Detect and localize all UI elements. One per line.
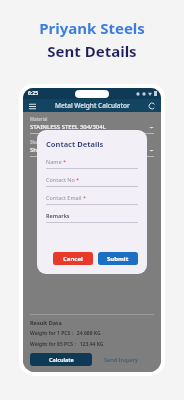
staticText: STAINLESS STEEL 304/304L xyxy=(30,123,149,131)
button[interactable]: Shape xyxy=(30,139,154,157)
button[interactable]: Cancel xyxy=(53,252,93,265)
staticText: Cancel xyxy=(63,255,83,263)
staticText: 6:25 xyxy=(28,90,38,97)
staticText: Name xyxy=(46,158,62,165)
staticText: Result Data xyxy=(30,319,62,326)
staticText: Contact Details xyxy=(46,139,104,149)
staticText: Sheet/Plate xyxy=(30,146,149,154)
button[interactable]: Calculate xyxy=(30,353,92,366)
staticText: Weight for 1 PCS : 24.688 KG xyxy=(30,330,101,337)
staticText: Shape xyxy=(30,139,44,145)
button[interactable]: Material xyxy=(30,116,154,134)
staticText: Weight for 85 PCS : 123.44 KG xyxy=(30,341,104,348)
staticText: Sent Details xyxy=(47,41,137,61)
staticText: * xyxy=(63,158,67,165)
staticText: * xyxy=(83,194,87,201)
staticText: * xyxy=(76,176,80,183)
button[interactable]: Remarks xyxy=(46,212,138,223)
staticText: Send Inquiry xyxy=(104,356,139,363)
button[interactable]: Name xyxy=(46,158,138,169)
staticText: Material xyxy=(30,116,48,122)
staticText: Contact No xyxy=(46,176,75,183)
staticText: Priyank Steels xyxy=(39,18,145,38)
staticText: Submit xyxy=(107,255,129,263)
staticText: Remarks xyxy=(46,212,70,219)
staticText: Calculate xyxy=(49,356,74,363)
button[interactable]: Refresh xyxy=(147,101,157,111)
button[interactable]: Contact No xyxy=(46,176,138,187)
button[interactable]: Submit xyxy=(98,252,138,265)
button[interactable]: Menu xyxy=(27,101,37,111)
staticText: Metal Weight Calculator xyxy=(55,101,130,110)
button[interactable]: Send Inquiry xyxy=(102,354,141,365)
button[interactable]: Contact Email xyxy=(46,194,138,205)
staticText: Contact Email xyxy=(46,194,82,201)
